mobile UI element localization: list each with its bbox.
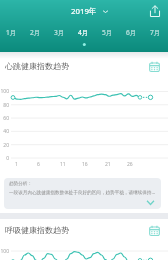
button[interactable]: Share xyxy=(146,2,164,20)
button[interactable]: 2月 xyxy=(23,28,47,37)
button[interactable]: 1月 xyxy=(0,28,23,37)
button[interactable]: 7月 xyxy=(143,28,167,37)
staticText: 1月 xyxy=(6,28,17,37)
staticText: 100 xyxy=(0,248,9,255)
staticText: 20 xyxy=(0,142,9,149)
button[interactable]: 趋势分析： xyxy=(4,178,161,209)
staticText: 11 xyxy=(60,161,66,168)
staticText: 2019年 xyxy=(71,6,97,17)
staticText: 40 xyxy=(0,128,9,135)
staticText: 5月 xyxy=(102,28,113,37)
staticText: 21 xyxy=(105,161,111,168)
staticText: 26 xyxy=(127,161,133,168)
staticText: 3月 xyxy=(54,28,65,37)
button[interactable]: 5月 xyxy=(95,28,119,37)
staticText: 心跳健康指数趋势 xyxy=(5,61,69,71)
staticText: 7月 xyxy=(150,28,161,37)
button[interactable]: 2019年 xyxy=(71,6,108,17)
button[interactable]: 6月 xyxy=(119,28,143,37)
staticText: 80 xyxy=(0,102,9,109)
staticText: 6 xyxy=(37,161,40,168)
staticText: 2月 xyxy=(30,28,41,37)
button[interactable]: 3月 xyxy=(47,28,71,37)
staticText: 60 xyxy=(0,115,9,122)
staticText: 一段该月内心跳健康指数整体处于良好的区间，趋势平稳，请继续保持… xyxy=(9,189,156,195)
staticText: 0 xyxy=(0,155,9,162)
staticText: 16 xyxy=(82,161,88,168)
staticText: 1 xyxy=(15,161,18,168)
staticText: 呼吸健康指数趋势 xyxy=(5,225,69,235)
button[interactable]: Calendar xyxy=(147,223,161,237)
staticText: 100 xyxy=(0,88,9,95)
button[interactable]: 4月 xyxy=(71,28,95,37)
staticText: 趋势分析： xyxy=(9,181,32,187)
button[interactable]: Calendar xyxy=(147,59,161,73)
staticText: 4月 xyxy=(78,28,89,37)
staticText: 6月 xyxy=(126,28,137,37)
